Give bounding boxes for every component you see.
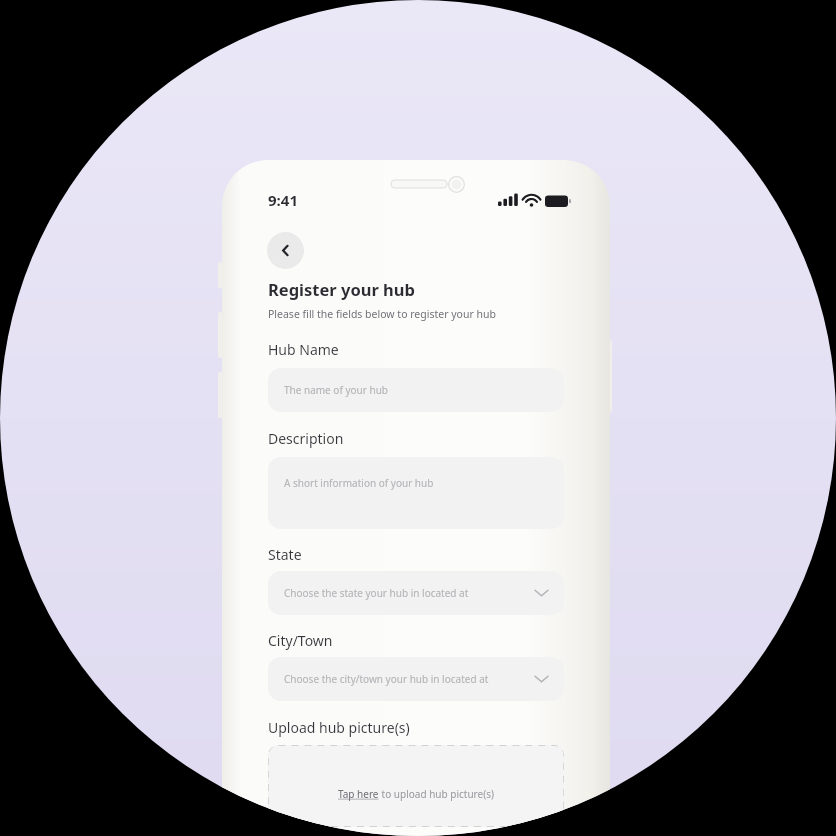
staticText: Choose the city/town your hub in located… — [284, 672, 489, 686]
staticText: Choose the state your hub in located at — [284, 586, 469, 600]
button[interactable]: Tap here — [268, 745, 564, 827]
staticText: Hub Name — [268, 340, 339, 359]
staticText: Upload hub picture(s) — [268, 718, 410, 737]
staticText: City/Town — [268, 631, 333, 650]
staticText: to upload hub picture(s) — [379, 787, 494, 801]
button[interactable]: Choose the city/town your hub in located… — [268, 657, 564, 701]
staticText: Register your hub — [268, 278, 415, 300]
button[interactable]: A short information of your hub — [268, 457, 564, 529]
staticText: Please fill the fields below to register… — [268, 307, 496, 321]
button[interactable]: The name of your hub — [268, 368, 564, 412]
staticText: Description — [268, 429, 344, 448]
staticText: 9:41 — [268, 190, 298, 210]
staticText: State — [268, 545, 302, 564]
staticText: A short information of your hub — [284, 476, 434, 490]
staticText: Tap here — [338, 787, 379, 801]
staticText: The name of your hub — [284, 383, 389, 397]
button[interactable]: Back — [267, 232, 304, 269]
button[interactable]: Choose the state your hub in located at — [268, 571, 564, 615]
